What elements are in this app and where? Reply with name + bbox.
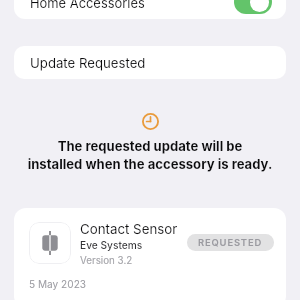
button[interactable]: Update Requested: [14, 46, 286, 79]
staticText: REQUESTED: [198, 237, 263, 248]
button[interactable]: Home Accessories toggle: [234, 0, 272, 14]
staticText: The requested update will be installed w…: [0, 138, 300, 172]
staticText: Contact Sensor: [80, 221, 178, 237]
staticText: Version 3.2: [80, 255, 133, 267]
staticText: Home Accessories: [30, 0, 145, 12]
button[interactable]: Home Accessories: [14, 0, 286, 19]
staticText: 5 May 2023: [29, 278, 87, 290]
staticText: Eve Systems: [80, 239, 143, 251]
button[interactable]: Contact Sensor: [14, 208, 286, 268]
button[interactable]: REQUESTED: [187, 234, 274, 251]
staticText: Update Requested: [30, 55, 146, 71]
